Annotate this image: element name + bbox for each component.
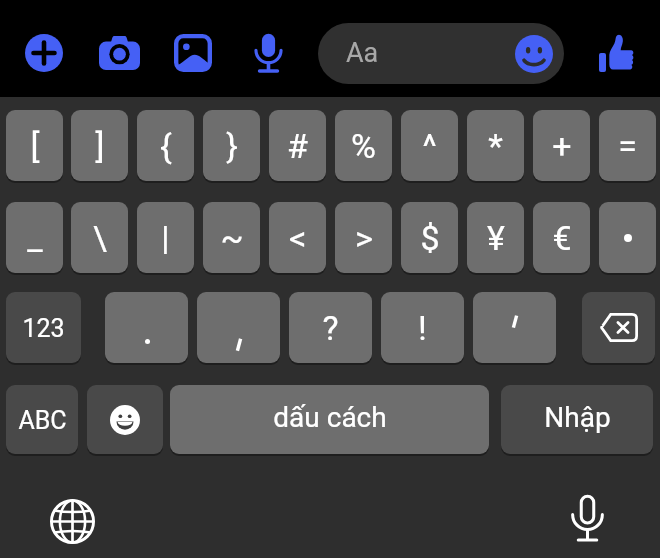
- staticText: €: [552, 218, 572, 258]
- staticText: $: [420, 218, 440, 258]
- button[interactable]: Voice message: [244, 29, 292, 77]
- staticText: +: [552, 126, 572, 166]
- staticText: =: [618, 126, 637, 166]
- button[interactable]: Nhập: [501, 385, 653, 454]
- staticText: ~: [220, 218, 244, 258]
- button[interactable]: %: [335, 110, 392, 181]
- staticText: *: [488, 126, 503, 166]
- button[interactable]: *: [467, 110, 524, 181]
- staticText: dấu cách: [273, 401, 387, 434]
- button[interactable]: [473, 292, 556, 363]
- button[interactable]: ]: [71, 110, 128, 181]
- staticText: %: [351, 126, 376, 166]
- button[interactable]: Emoji: [515, 35, 553, 73]
- button[interactable]: ~: [203, 202, 260, 273]
- staticText: <: [289, 218, 307, 258]
- button[interactable]: €: [533, 202, 590, 273]
- button[interactable]: }: [203, 110, 260, 181]
- staticText: 123: [22, 314, 65, 343]
- button[interactable]: [: [6, 110, 63, 181]
- staticText: Aa: [346, 37, 379, 69]
- staticText: {: [160, 126, 172, 166]
- button[interactable]: ¥: [467, 202, 524, 273]
- button[interactable]: Aa: [318, 23, 564, 84]
- button[interactable]: ?: [289, 292, 372, 363]
- button[interactable]: Send like: [592, 28, 640, 76]
- button[interactable]: +: [533, 110, 590, 181]
- staticText: #: [287, 126, 308, 166]
- staticText: >: [355, 218, 373, 258]
- button[interactable]: dấu cách: [170, 385, 489, 454]
- button[interactable]: \: [71, 202, 128, 273]
- button[interactable]: _: [6, 202, 63, 273]
- button[interactable]: ABC: [6, 385, 78, 454]
- button[interactable]: =: [599, 110, 656, 181]
- staticText: ^: [422, 126, 437, 166]
- button[interactable]: Voice input: [563, 494, 611, 542]
- button[interactable]: Camera: [95, 29, 143, 77]
- staticText: ]: [95, 126, 105, 166]
- button[interactable]: $: [401, 202, 458, 273]
- button[interactable]: [105, 292, 188, 363]
- button[interactable]: >: [335, 202, 392, 273]
- button[interactable]: [197, 292, 280, 363]
- button[interactable]: #: [269, 110, 326, 181]
- staticText: ABC: [18, 406, 67, 435]
- button[interactable]: <: [269, 202, 326, 273]
- staticText: ¥: [487, 218, 505, 258]
- button[interactable]: 123: [6, 292, 81, 363]
- staticText: }: [226, 126, 238, 166]
- button[interactable]: Backspace: [582, 292, 655, 363]
- button[interactable]: [599, 202, 656, 273]
- staticText: Nhập: [544, 401, 611, 434]
- button[interactable]: |: [137, 202, 194, 273]
- button[interactable]: !: [381, 292, 464, 363]
- staticText: \: [93, 218, 107, 258]
- staticText: |: [161, 218, 170, 258]
- button[interactable]: Gallery: [169, 29, 217, 77]
- button[interactable]: Add: [20, 29, 68, 77]
- button[interactable]: Emoji: [87, 385, 163, 454]
- button[interactable]: ^: [401, 110, 458, 181]
- staticText: ?: [322, 308, 339, 348]
- staticText: [: [30, 126, 40, 166]
- button[interactable]: Change language: [48, 497, 96, 545]
- staticText: _: [27, 218, 43, 258]
- staticText: !: [418, 308, 427, 348]
- button[interactable]: {: [137, 110, 194, 181]
